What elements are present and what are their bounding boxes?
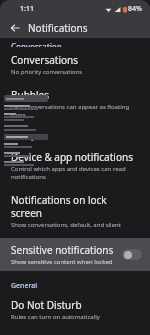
staticText: Rules can turn on automatically: [11, 313, 100, 321]
button[interactable]: Conversation: [0, 38, 150, 44]
staticText: Conversations: [11, 53, 79, 67]
button[interactable]: Do Not Disturb: [0, 297, 150, 322]
staticText: Show conversations, default, and silent: [11, 221, 121, 229]
staticText: Bubbles: [11, 88, 49, 102]
staticText: Device & app notifications: [11, 150, 133, 164]
staticText: Notifications: [28, 21, 88, 35]
staticText: General: [11, 281, 38, 291]
staticText: No priority conversations: [11, 68, 83, 76]
button[interactable]: Bubbles: [0, 87, 150, 120]
staticText: Control which apps and devices can read …: [11, 165, 140, 181]
staticText: 84%: [128, 4, 142, 14]
button[interactable]: Conversations: [0, 52, 150, 77]
staticText: Do Not Disturb: [11, 298, 82, 312]
button[interactable]: Notifications on lock screen: [0, 192, 150, 230]
staticText: Privacy: [11, 132, 35, 142]
staticText: Show sensitive content when locked: [11, 258, 113, 266]
staticText: 1:11: [20, 4, 34, 14]
button[interactable]: Toggle: [122, 249, 142, 260]
staticText: On / Conversations can appear as floatin…: [11, 103, 140, 119]
button[interactable]: Back: [6, 19, 24, 37]
staticText: Sensitive notifications: [11, 243, 114, 257]
button[interactable]: Sensitive notifications: [0, 238, 150, 271]
button[interactable]: Device & app notifications: [0, 149, 150, 182]
staticText: Notifications on lock screen: [11, 193, 140, 220]
staticText: Conversation: [11, 41, 62, 47]
